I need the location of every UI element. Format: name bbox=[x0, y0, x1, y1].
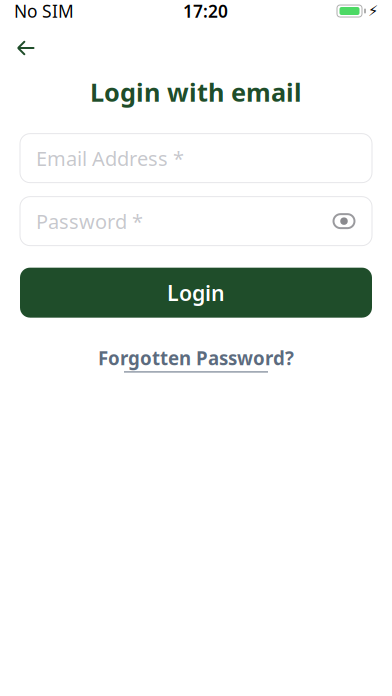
staticText: ⚡︎ bbox=[368, 3, 378, 19]
button[interactable]: Password * bbox=[20, 197, 372, 246]
staticText: No SIM bbox=[14, 0, 74, 22]
staticText: Forgotten Password? bbox=[98, 346, 294, 370]
staticText: Login bbox=[167, 278, 225, 307]
staticText: 17:20 bbox=[183, 0, 228, 22]
button[interactable]: Back bbox=[7, 32, 45, 64]
button[interactable]: Show password bbox=[332, 209, 356, 233]
staticText: Login with email bbox=[90, 75, 302, 109]
staticText: Password * bbox=[36, 208, 143, 234]
button[interactable]: Login bbox=[20, 268, 372, 318]
button[interactable]: Forgotten Password? bbox=[88, 340, 304, 378]
button[interactable]: Email Address * bbox=[20, 134, 372, 183]
staticText: Email Address * bbox=[36, 145, 184, 171]
